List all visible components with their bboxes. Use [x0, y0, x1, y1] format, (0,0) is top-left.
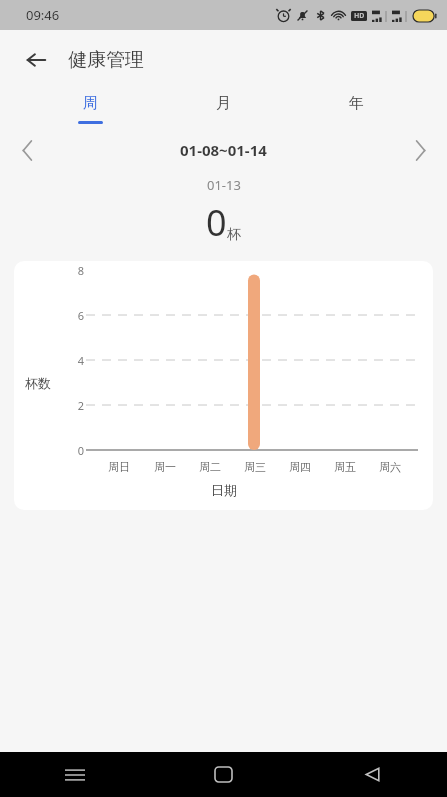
staticText: 周二 [199, 460, 221, 474]
staticText: 杯 [227, 226, 241, 244]
button[interactable]: Recent apps [0, 752, 149, 797]
staticText: 日期 [211, 482, 237, 498]
staticText: 01-08~01-14 [180, 140, 267, 160]
button[interactable]: Home [149, 752, 298, 797]
button[interactable]: 年 [290, 90, 423, 132]
staticText: 2 [68, 398, 84, 413]
staticText: 周五 [334, 460, 356, 474]
button[interactable]: Back [298, 752, 447, 797]
staticText: 健康管理 [68, 48, 144, 72]
button[interactable]: 月 [157, 90, 290, 132]
staticText: 周六 [379, 460, 401, 474]
button[interactable]: Next week [399, 132, 441, 168]
button[interactable]: 周 [24, 90, 157, 132]
staticText: 01-13 [207, 176, 241, 194]
staticText: 周 [83, 94, 98, 113]
staticText: 周四 [289, 460, 311, 474]
staticText: 8 [68, 263, 84, 278]
staticText: 周日 [108, 460, 130, 474]
staticText: HD [354, 11, 365, 21]
staticText: 0 [206, 198, 227, 247]
staticText: 杯数 [25, 375, 51, 391]
staticText: 6 [68, 308, 84, 323]
staticText: 月 [216, 94, 231, 113]
staticText: 4 [68, 353, 84, 368]
staticText: 年 [349, 94, 364, 113]
button[interactable]: Previous week [6, 132, 48, 168]
staticText: 周三 [244, 460, 266, 474]
staticText: 09:46 [26, 6, 60, 24]
button[interactable]: Back [14, 38, 58, 82]
staticText: 0 [68, 443, 84, 458]
staticText: 周一 [154, 460, 176, 474]
